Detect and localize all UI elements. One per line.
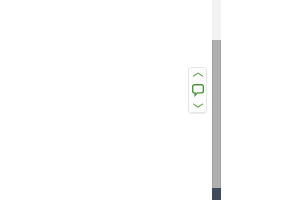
button[interactable]: Scroll bar	[212, 0, 221, 200]
button[interactable]: Comments	[188, 81, 207, 99]
button[interactable]: Previous comment	[188, 68, 207, 81]
button[interactable]: Next comment	[188, 99, 207, 112]
